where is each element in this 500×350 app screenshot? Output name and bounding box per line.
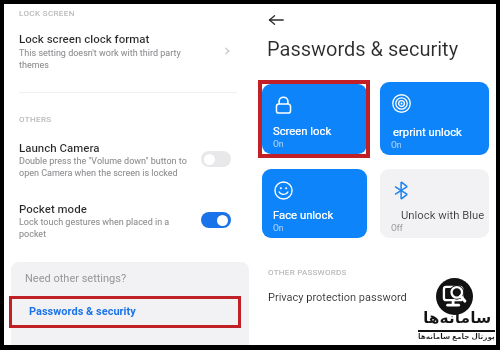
staticText: Privacy protection password bbox=[268, 291, 407, 304]
button[interactable]: Unlock with Blue bbox=[380, 169, 489, 238]
staticText: Double press the "Volume down" button to… bbox=[19, 156, 187, 178]
button[interactable]: Switch off bbox=[201, 151, 231, 167]
staticText: پورتال جامع سامانه‌ها bbox=[418, 331, 495, 341]
staticText: Face unlock bbox=[273, 209, 334, 222]
staticText: Lock touch gestures when placed in a poc… bbox=[19, 217, 170, 239]
button[interactable]: Switch on bbox=[201, 212, 231, 228]
staticText: LOCK SCREEN bbox=[19, 9, 75, 18]
staticText: سامانه‌ها bbox=[423, 309, 492, 327]
button[interactable]: Launch Camera bbox=[4, 137, 249, 185]
staticText: OTHER PASSWORDS bbox=[268, 268, 347, 277]
button[interactable]: Face unlock bbox=[262, 169, 367, 238]
button[interactable]: erprint unlock bbox=[380, 82, 489, 155]
staticText: This setting doesn't work with third par… bbox=[19, 48, 181, 70]
staticText: Passwords & security bbox=[267, 37, 459, 60]
button[interactable]: Privacy protection password bbox=[249, 286, 496, 316]
staticText: Unlock with Blue bbox=[401, 209, 485, 222]
staticText: OTHERS bbox=[19, 115, 52, 124]
staticText: Pocket mode bbox=[19, 202, 87, 215]
button[interactable]: Lock screen clock format bbox=[4, 28, 249, 78]
button[interactable]: Back bbox=[267, 11, 285, 29]
staticText: Lock screen clock format bbox=[19, 32, 150, 45]
staticText: Off bbox=[391, 223, 403, 233]
staticText: erprint unlock bbox=[393, 126, 462, 139]
button[interactable]: Screen lock bbox=[262, 84, 367, 154]
staticText: On bbox=[273, 223, 284, 233]
button[interactable]: Passwords & security bbox=[9, 296, 241, 328]
staticText: Passwords & security bbox=[29, 305, 136, 318]
staticText: On bbox=[273, 139, 284, 149]
staticText: Need other settings? bbox=[25, 272, 127, 285]
staticText: Launch Camera bbox=[19, 141, 100, 154]
button[interactable]: Pocket mode bbox=[4, 198, 249, 246]
staticText: On bbox=[391, 140, 402, 150]
staticText: Screen lock bbox=[273, 125, 332, 138]
